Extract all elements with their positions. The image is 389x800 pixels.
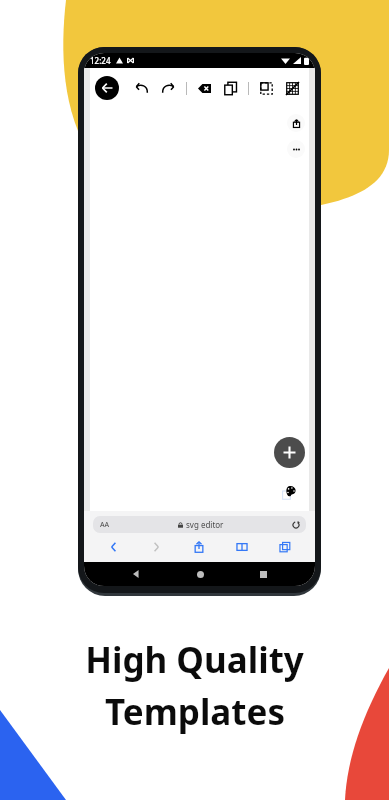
button[interactable]: Undo	[132, 79, 151, 98]
button[interactable]: Select	[257, 79, 276, 98]
button[interactable]: Forward	[135, 536, 177, 558]
button[interactable]: Back	[95, 76, 119, 100]
button[interactable]: AA	[93, 516, 306, 533]
button[interactable]: Palette	[274, 477, 304, 507]
button[interactable]: Delete	[195, 79, 214, 98]
button[interactable]: Bookmarks	[220, 536, 263, 558]
button[interactable]: Share	[177, 536, 220, 558]
button[interactable]: Back	[93, 536, 135, 558]
button[interactable]: Tabs	[263, 536, 306, 558]
button[interactable]: Duplicate	[221, 79, 240, 98]
button[interactable]: Redo	[159, 79, 178, 98]
staticText: AA	[100, 520, 110, 530]
button[interactable]: Add	[274, 437, 305, 468]
button[interactable]: Transparency	[283, 79, 302, 98]
button[interactable]: Home	[189, 563, 211, 585]
staticText: Templates	[105, 688, 285, 736]
staticText: 12:24	[90, 55, 111, 66]
button[interactable]: Recents	[252, 563, 274, 585]
button[interactable]: More options	[287, 140, 305, 158]
button[interactable]: Back	[125, 563, 147, 585]
button[interactable]: Export	[287, 114, 305, 132]
staticText: svg editor	[186, 519, 224, 530]
staticText: High Quality	[85, 636, 304, 684]
